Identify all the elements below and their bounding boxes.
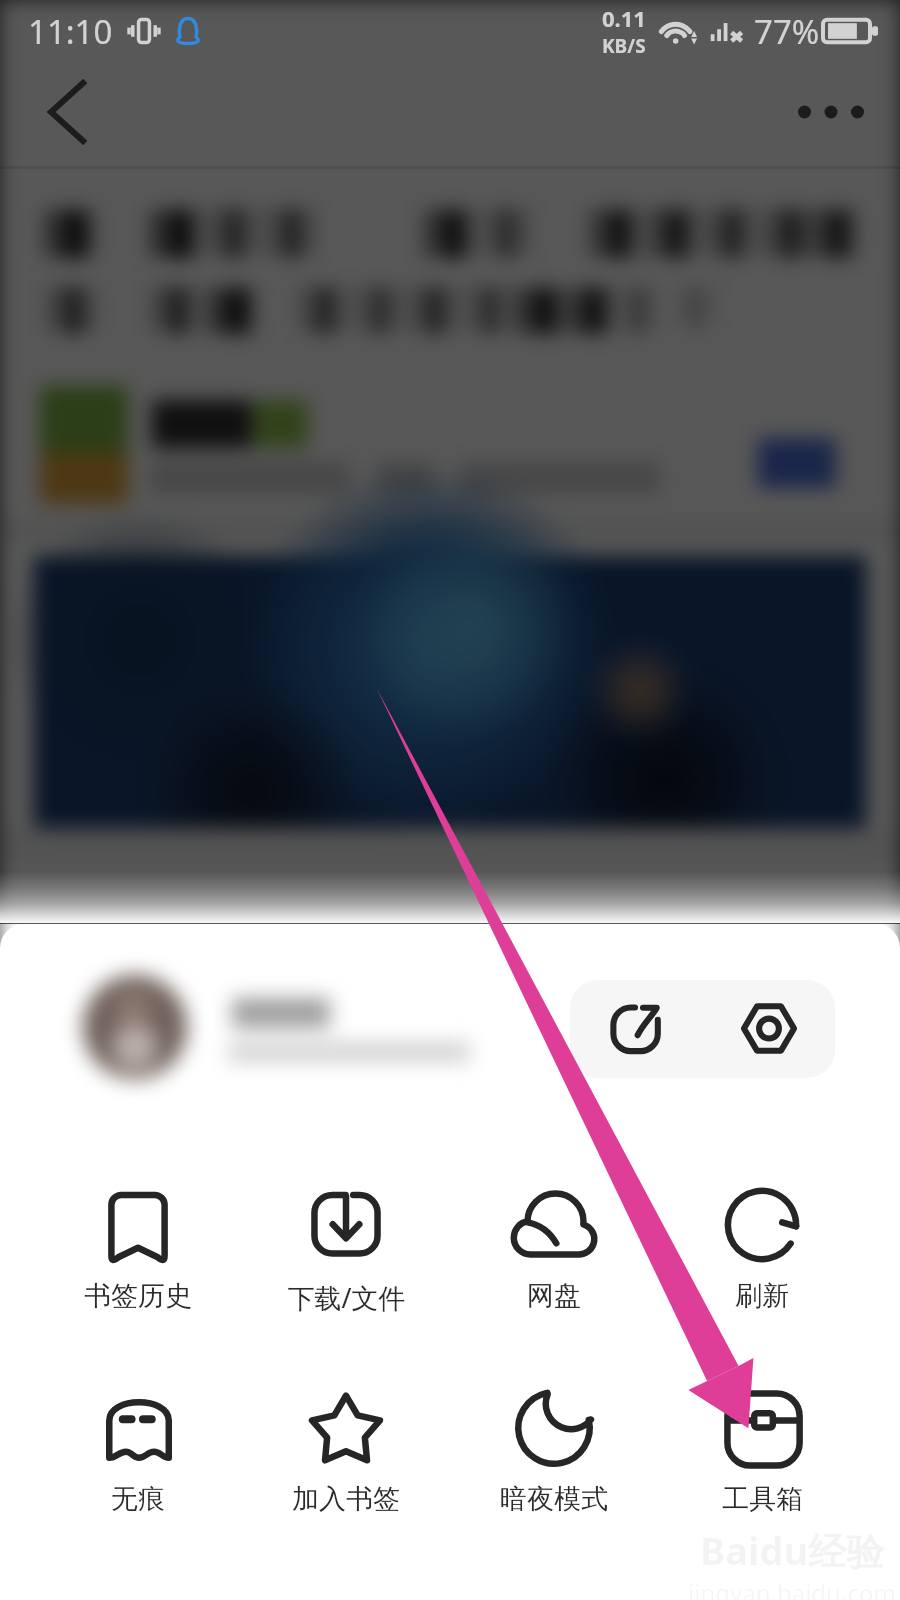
staticText: 网盘 (527, 1279, 581, 1313)
button[interactable]: 加入书签 (242, 1390, 450, 1516)
staticText: 书签历史 (84, 1279, 192, 1313)
button[interactable]: 书签历史 (34, 1187, 242, 1313)
staticText: 无痕 (111, 1482, 165, 1516)
staticText: KB/S (602, 33, 646, 59)
button[interactable]: 刷新 (658, 1187, 866, 1313)
staticText: 下载/文件 (287, 1279, 406, 1316)
button[interactable]: 无痕 (34, 1390, 242, 1516)
button[interactable]: Share (570, 980, 702, 1078)
staticText: 加入书签 (292, 1482, 400, 1516)
button[interactable]: Back (18, 64, 114, 160)
staticText: 工具箱 (722, 1482, 803, 1516)
button[interactable]: 下载/文件 (242, 1187, 450, 1316)
staticText: 刷新 (735, 1279, 789, 1313)
staticText: 0.11 (602, 3, 646, 33)
button[interactable]: More options (776, 64, 886, 160)
button[interactable]: 工具箱 (658, 1390, 866, 1516)
staticText: 77% (754, 9, 820, 54)
button[interactable]: 网盘 (450, 1187, 658, 1313)
button[interactable]: Settings (702, 980, 835, 1078)
staticText: 11:10 (28, 9, 113, 54)
staticText: Baidu经验 (700, 1524, 885, 1576)
button[interactable]: 暗夜模式 (450, 1390, 658, 1516)
staticText: 暗夜模式 (500, 1482, 608, 1516)
